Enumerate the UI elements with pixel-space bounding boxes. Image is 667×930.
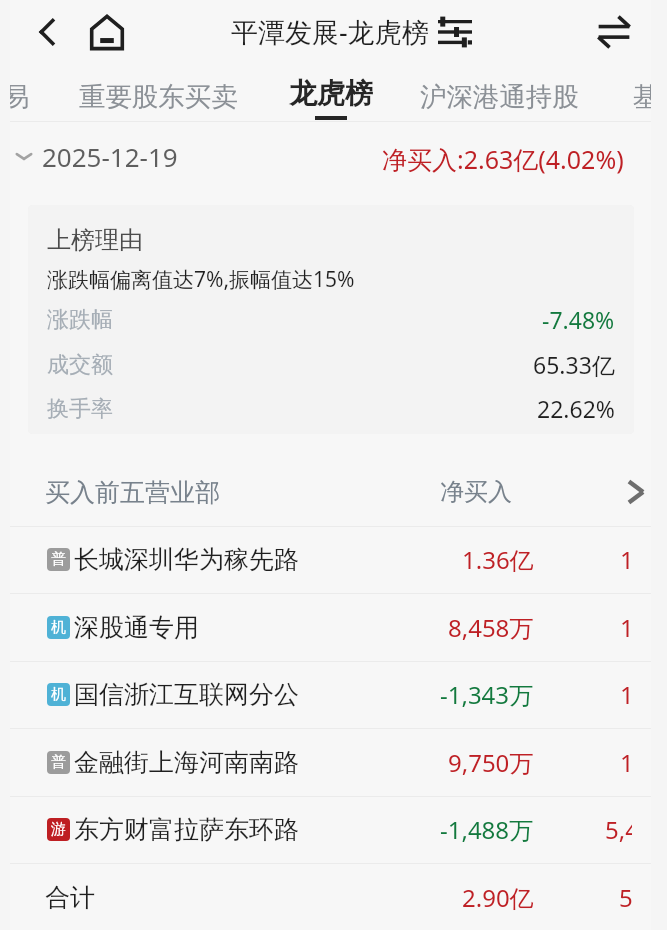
staticText: 2.90亿: [462, 881, 534, 914]
staticText: 1: [620, 611, 632, 644]
staticText: 普: [51, 550, 66, 569]
button[interactable]: 沪深港通持股: [420, 80, 579, 113]
staticText: 1: [620, 543, 632, 576]
button[interactable]: 普: [0, 729, 667, 796]
button[interactable]: 龙虎榜: [289, 76, 373, 120]
staticText: 5: [619, 881, 632, 914]
staticText: 普: [51, 753, 66, 772]
staticText: 平潭发展-龙虎榜: [231, 13, 429, 50]
staticText: 净买入: [440, 477, 512, 507]
staticText: 2025-12-19: [42, 139, 178, 174]
button[interactable]: 买入前五营业部: [0, 458, 667, 526]
staticText: 换手率: [47, 395, 113, 423]
staticText: 东方财富拉萨东环路: [74, 814, 299, 845]
staticText: 涨跌幅: [47, 306, 113, 334]
button[interactable]: Back: [25, 10, 69, 54]
staticText: 8,458万: [448, 611, 534, 644]
staticText: 龙虎榜: [289, 76, 373, 111]
staticText: 机: [51, 685, 66, 704]
staticText: -1,343万: [440, 678, 534, 711]
button[interactable]: 普: [0, 526, 667, 593]
staticText: 机: [51, 618, 66, 637]
staticText: -7.48%: [542, 304, 615, 335]
staticText: 合计: [45, 882, 95, 913]
staticText: 基: [633, 80, 651, 113]
button[interactable]: Home: [85, 10, 129, 54]
staticText: 上榜理由: [47, 225, 143, 255]
staticText: 游: [51, 820, 66, 839]
button[interactable]: 重要股东买卖: [79, 80, 238, 113]
button[interactable]: Filter settings: [433, 11, 477, 53]
button[interactable]: 2025-12-19: [12, 134, 178, 178]
staticText: 净买入:2.63亿(4.02%): [382, 142, 624, 176]
button[interactable]: Switch stock: [592, 10, 636, 54]
staticText: 5,490: [605, 813, 632, 846]
staticText: 金融街上海河南南路: [74, 747, 299, 778]
staticText: 涨跌幅偏离值达7%,振幅值达15%: [47, 265, 355, 294]
button[interactable]: 游: [0, 796, 667, 863]
staticText: -1,488万: [440, 813, 534, 846]
staticText: 买入前五营业部: [45, 477, 220, 508]
staticText: 深股通专用: [74, 612, 199, 643]
staticText: 1.36亿: [462, 543, 534, 576]
staticText: 9,750万: [448, 746, 534, 779]
staticText: 成交额: [47, 351, 113, 379]
button[interactable]: 机: [0, 594, 667, 661]
staticText: 22.62%: [537, 393, 615, 424]
staticText: 1: [620, 746, 632, 779]
button[interactable]: 机: [0, 661, 667, 728]
staticText: 1: [620, 678, 632, 711]
staticText: 易: [10, 80, 30, 113]
staticText: 65.33亿: [533, 349, 615, 380]
staticText: 国信浙江互联网分公: [74, 679, 299, 710]
staticText: 长城深圳华为稼先路: [74, 544, 299, 575]
